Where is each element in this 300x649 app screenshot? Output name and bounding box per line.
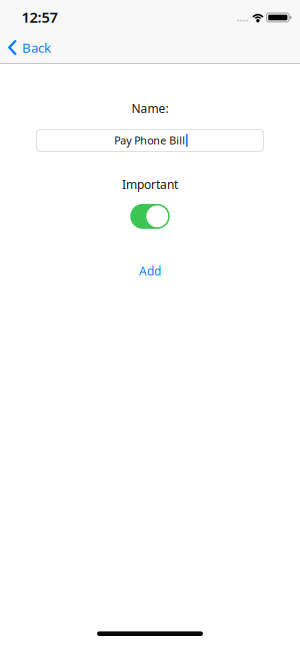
button[interactable]: Back (0, 40, 51, 57)
staticText: 12:57 (21, 7, 57, 27)
button[interactable]: Add (139, 229, 161, 279)
button[interactable]: Important (130, 204, 170, 229)
staticText: Important (122, 176, 178, 192)
staticText: Back (22, 39, 51, 56)
staticText: Pay Phone Bill (114, 133, 185, 148)
staticText: Name: (131, 100, 168, 116)
staticText: Add (139, 263, 161, 279)
